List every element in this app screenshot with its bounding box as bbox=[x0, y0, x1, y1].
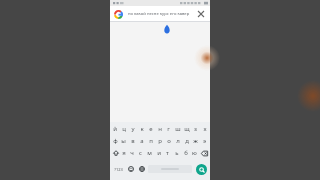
staticText: щ bbox=[184, 125, 190, 133]
staticText: т bbox=[166, 149, 169, 157]
button[interactable]: ц bbox=[119, 123, 128, 135]
button[interactable]: ?123 bbox=[111, 159, 125, 179]
staticText: ы bbox=[121, 137, 126, 145]
staticText: н bbox=[158, 125, 162, 133]
button[interactable]: р bbox=[155, 135, 164, 147]
staticText: и bbox=[157, 149, 161, 157]
button[interactable]: в bbox=[128, 135, 137, 147]
staticText: ?123 bbox=[114, 167, 123, 172]
staticText: с bbox=[139, 149, 142, 157]
button[interactable]: х bbox=[200, 123, 209, 135]
staticText: д bbox=[185, 137, 189, 145]
button[interactable]: ь bbox=[172, 147, 181, 159]
button[interactable]: Change language bbox=[136, 159, 147, 179]
button[interactable]: Backspace bbox=[199, 147, 209, 159]
button[interactable]: и bbox=[154, 147, 163, 159]
button[interactable]: ф bbox=[111, 135, 119, 147]
button[interactable]: Emoji bbox=[125, 159, 136, 179]
button[interactable]: Clear query bbox=[196, 9, 206, 19]
button[interactable]: б bbox=[181, 147, 190, 159]
button[interactable]: Search bbox=[196, 164, 207, 175]
button[interactable]: ш bbox=[173, 123, 182, 135]
button[interactable]: а bbox=[137, 135, 146, 147]
staticText: п bbox=[149, 137, 153, 145]
button[interactable]: я bbox=[120, 147, 128, 159]
staticText: й bbox=[113, 125, 117, 133]
button[interactable]: г bbox=[164, 123, 173, 135]
button[interactable]: Google bbox=[110, 6, 210, 22]
staticText: р bbox=[158, 137, 162, 145]
button[interactable]: п bbox=[146, 135, 155, 147]
button[interactable]: Shift bbox=[111, 147, 120, 159]
button[interactable]: л bbox=[173, 135, 182, 147]
staticText: по какой песне курс его кавер bbox=[128, 11, 190, 17]
button[interactable]: щ bbox=[182, 123, 191, 135]
button[interactable]: ы bbox=[119, 135, 128, 147]
button[interactable]: й bbox=[111, 123, 119, 135]
button[interactable]: м bbox=[145, 147, 154, 159]
staticText: э bbox=[203, 137, 206, 145]
staticText: я bbox=[122, 149, 126, 157]
button[interactable]: з bbox=[191, 123, 200, 135]
staticText: ь bbox=[175, 149, 179, 157]
staticText: л bbox=[176, 137, 180, 145]
button[interactable]: у bbox=[128, 123, 137, 135]
staticText: ф bbox=[113, 137, 118, 145]
button[interactable]: к bbox=[137, 123, 146, 135]
staticText: е bbox=[149, 125, 153, 133]
staticText: у bbox=[131, 125, 135, 133]
staticText: ш bbox=[175, 125, 181, 133]
staticText: к bbox=[140, 125, 144, 133]
staticText: м bbox=[147, 149, 152, 157]
staticText: б bbox=[184, 149, 188, 157]
button[interactable]: ч bbox=[128, 147, 136, 159]
button[interactable]: ж bbox=[191, 135, 200, 147]
button[interactable]: ю bbox=[190, 147, 199, 159]
staticText: о bbox=[167, 137, 171, 145]
staticText: ю bbox=[192, 149, 197, 157]
staticText: г bbox=[167, 125, 170, 133]
button[interactable]: Space bbox=[148, 165, 192, 173]
staticText: ц bbox=[122, 125, 126, 133]
staticText: в bbox=[131, 137, 135, 145]
button[interactable]: т bbox=[163, 147, 172, 159]
staticText: х bbox=[203, 125, 207, 133]
staticText: ж bbox=[193, 137, 198, 145]
button[interactable]: э bbox=[200, 135, 209, 147]
button[interactable]: о bbox=[164, 135, 173, 147]
button[interactable]: д bbox=[182, 135, 191, 147]
staticText: а bbox=[140, 137, 144, 145]
staticText: ч bbox=[130, 149, 134, 157]
button[interactable]: с bbox=[136, 147, 145, 159]
other: Google bbox=[114, 10, 123, 19]
staticText: з bbox=[194, 125, 197, 133]
button[interactable]: н bbox=[155, 123, 164, 135]
button[interactable]: е bbox=[146, 123, 155, 135]
